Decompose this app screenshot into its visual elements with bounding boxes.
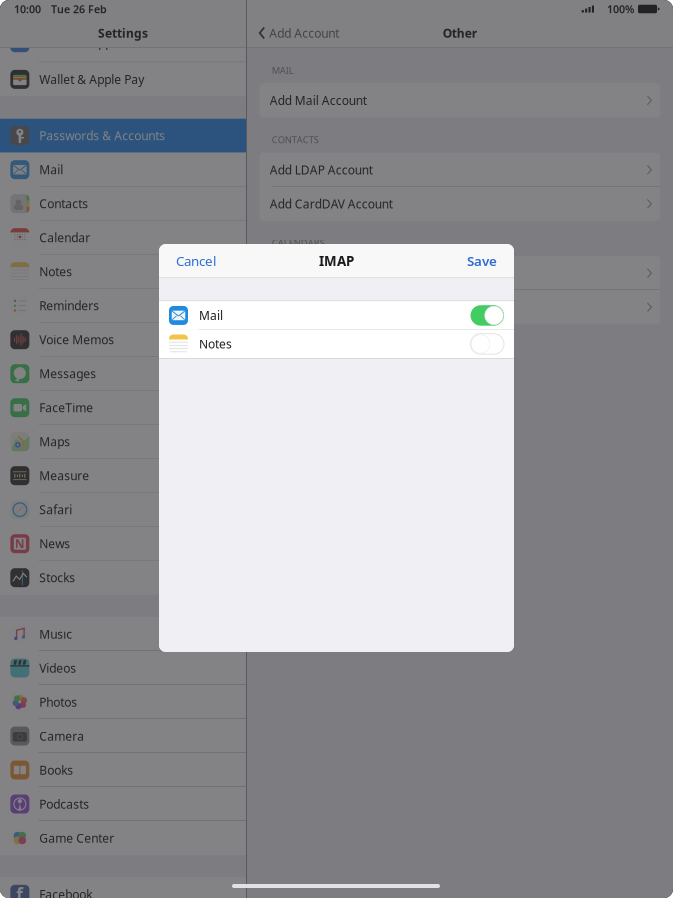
staticText: Stocks — [39, 570, 75, 586]
button[interactable]: Mail — [159, 301, 514, 330]
staticText: CALENDARS — [272, 237, 325, 249]
staticText: Cancel — [176, 252, 216, 270]
staticText: Safari — [39, 502, 72, 518]
staticText: Books — [39, 762, 73, 778]
button[interactable]: Add Subscribed Calendar — [260, 290, 660, 324]
button[interactable]: Calendar — [0, 221, 246, 255]
button[interactable]: Music — [0, 617, 246, 651]
staticText: Other — [443, 25, 477, 41]
button[interactable]: Voice Memos — [0, 323, 246, 357]
button[interactable]: Camera — [0, 719, 246, 753]
button[interactable]: Passwords & Accounts — [0, 119, 246, 153]
button[interactable]: Podcasts — [0, 787, 246, 821]
button[interactable]: f — [0, 877, 246, 898]
staticText: Notes — [199, 336, 232, 352]
button[interactable]: iTunes & App Store — [0, 48, 246, 62]
staticText: Add LDAP Account — [270, 162, 373, 178]
button[interactable]: Maps — [0, 425, 246, 459]
button[interactable]: Photos — [0, 685, 246, 719]
button[interactable]: Stocks — [0, 561, 246, 595]
button[interactable]: Game Center — [0, 821, 246, 855]
button[interactable]: Cancel — [159, 245, 216, 277]
staticText: 10:00 — [14, 2, 41, 16]
staticText: Tue 26 Feb — [51, 2, 107, 16]
staticText: Maps — [39, 434, 70, 450]
staticText: Measure — [39, 468, 89, 484]
button[interactable]: FaceTime — [0, 391, 246, 425]
staticText: FaceTime — [39, 400, 93, 416]
button[interactable]: Notes — [0, 255, 246, 289]
staticText: Podcasts — [39, 796, 89, 812]
staticText: News — [39, 536, 70, 552]
button[interactable]: Reminders — [0, 289, 246, 323]
staticText: Facebook — [39, 886, 92, 898]
button[interactable]: Measure — [0, 459, 246, 493]
staticText: 100% — [607, 2, 634, 16]
button[interactable]: Add CalDAV Account — [260, 256, 660, 290]
staticText: Videos — [39, 660, 76, 676]
staticText: Reminders — [39, 298, 99, 314]
button[interactable]: Mail — [0, 153, 246, 187]
staticText: Add Mail Account — [270, 92, 367, 108]
staticText: Calendar — [39, 230, 90, 246]
button[interactable]: Add CardDAV Account — [260, 187, 660, 221]
staticText: Mail — [39, 162, 63, 178]
button[interactable]: Messages — [0, 357, 246, 391]
staticText: Contacts — [39, 196, 88, 212]
staticText: Wallet & Apple Pay — [39, 71, 144, 87]
button[interactable]: Save — [467, 245, 514, 277]
button[interactable]: Add Mail Account — [260, 83, 660, 117]
staticText: IMAP — [319, 252, 354, 270]
staticText: Settings — [98, 25, 148, 41]
staticText: MAIL — [272, 64, 294, 76]
staticText: Notes — [39, 264, 72, 280]
staticText: Camera — [39, 728, 84, 744]
button[interactable]: Videos — [0, 651, 246, 685]
button[interactable]: Add Account — [247, 19, 339, 47]
button[interactable]: Safari — [0, 493, 246, 527]
staticText: Music — [39, 626, 72, 642]
staticText: Add CardDAV Account — [270, 196, 393, 212]
staticText: Add CalDAV Account — [270, 265, 384, 281]
staticText: f — [16, 883, 23, 898]
staticText: Mail — [199, 307, 223, 323]
button[interactable]: Books — [0, 753, 246, 787]
staticText: Add Account — [269, 25, 339, 41]
button[interactable]: N — [0, 527, 246, 561]
staticText: Messages — [39, 366, 96, 382]
staticText: Game Center — [39, 830, 114, 846]
staticText: N — [15, 536, 25, 552]
button[interactable]: Contacts — [0, 187, 246, 221]
staticText: CONTACTS — [272, 133, 319, 146]
staticText: Add Subscribed Calendar — [270, 299, 411, 315]
staticText: iTunes & App Store — [39, 35, 145, 51]
staticText: Save — [467, 252, 497, 270]
staticText: Passwords & Accounts — [39, 128, 165, 144]
staticText: Photos — [39, 694, 77, 710]
button[interactable]: Wallet & Apple Pay — [0, 62, 246, 96]
button[interactable]: Add LDAP Account — [260, 153, 660, 187]
button[interactable]: Notes — [159, 330, 514, 358]
staticText: Voice Memos — [39, 332, 114, 348]
